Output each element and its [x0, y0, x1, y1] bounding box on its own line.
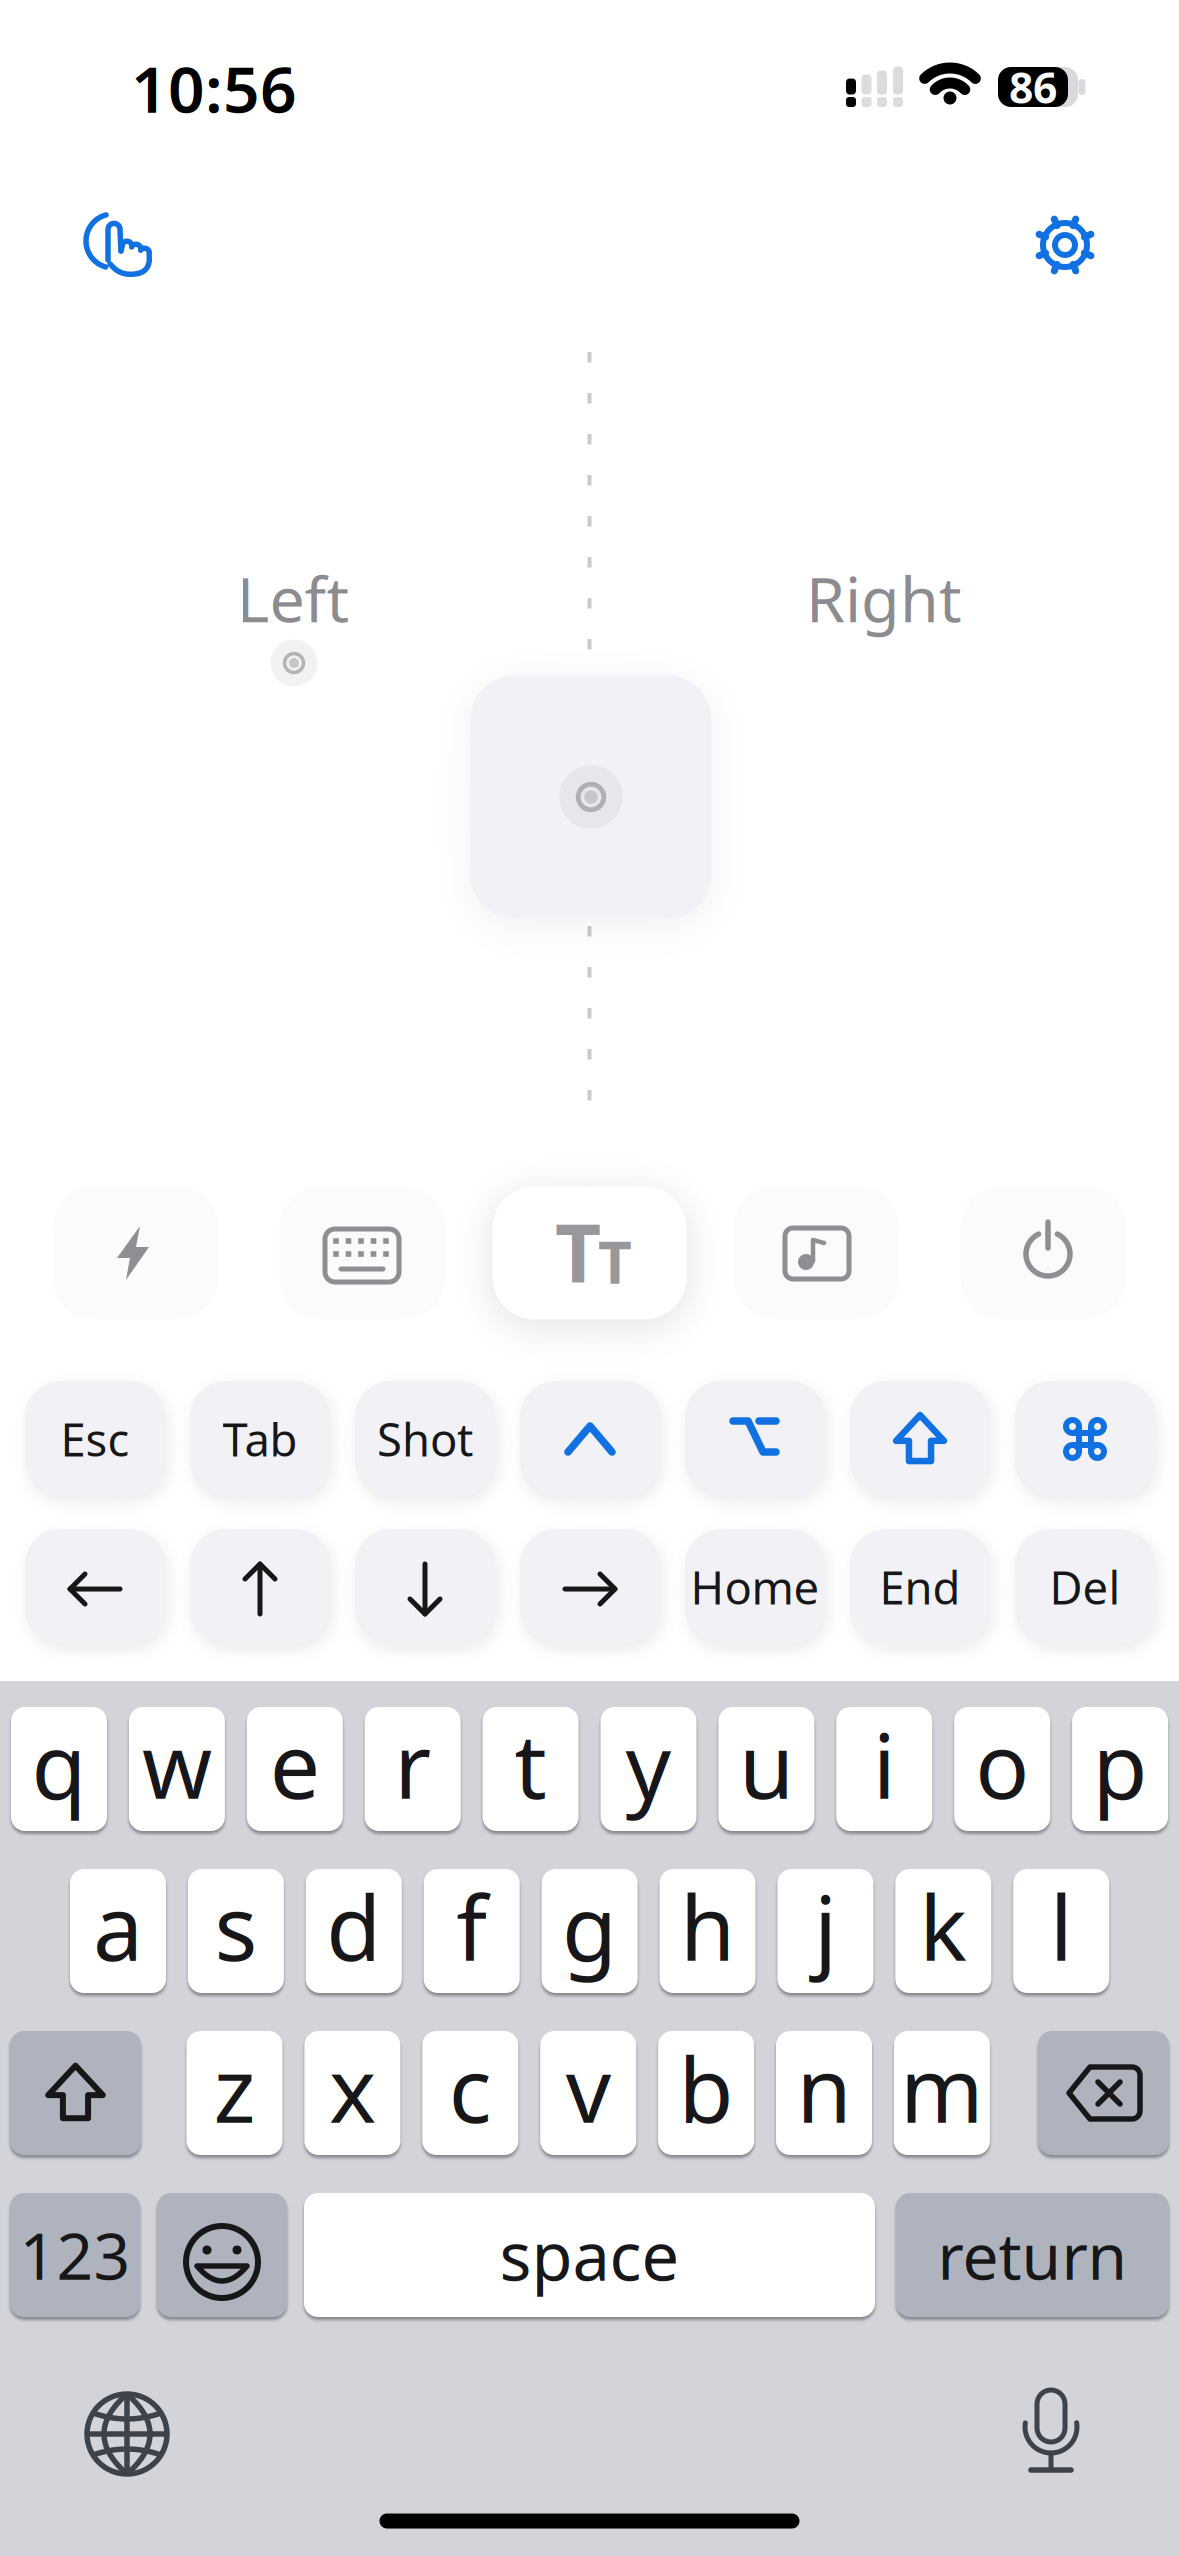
staticText: j: [814, 1867, 837, 1985]
button[interactable]: Shot: [355, 1381, 495, 1497]
staticText: End: [879, 1557, 960, 1617]
staticText: p: [1093, 1705, 1148, 1823]
button[interactable]: 123: [10, 2193, 140, 2317]
button[interactable]: [1025, 205, 1105, 285]
button[interactable]: s: [188, 1869, 284, 1993]
button[interactable]: Esc: [25, 1381, 165, 1497]
button[interactable]: [850, 1381, 990, 1497]
staticText: i: [873, 1705, 896, 1823]
staticText: m: [900, 2029, 984, 2147]
staticText: v: [566, 2029, 611, 2147]
button[interactable]: [77, 2384, 177, 2484]
button[interactable]: [1038, 2031, 1169, 2155]
staticText: n: [796, 2029, 851, 2147]
staticText: z: [213, 2029, 255, 2147]
button[interactable]: Del: [1015, 1529, 1155, 1645]
staticText: 86: [1009, 59, 1057, 115]
button[interactable]: f: [424, 1869, 520, 1993]
button[interactable]: [733, 1186, 899, 1319]
button[interactable]: return: [896, 2193, 1169, 2317]
staticText: l: [1050, 1867, 1073, 1985]
staticText: b: [679, 2029, 734, 2147]
button[interactable]: [520, 1529, 660, 1645]
staticText: k: [919, 1867, 967, 1985]
button[interactable]: [25, 1529, 165, 1645]
staticText: g: [562, 1867, 617, 1985]
staticText: h: [680, 1867, 735, 1985]
staticText: r: [394, 1705, 431, 1823]
staticText: Tab: [222, 1409, 297, 1469]
staticText: t: [515, 1705, 547, 1823]
staticText: Home: [690, 1557, 819, 1617]
button[interactable]: [10, 2031, 141, 2155]
staticText: o: [975, 1705, 1029, 1823]
staticText: d: [326, 1867, 381, 1985]
button[interactable]: Tab: [190, 1381, 330, 1497]
staticText: space: [499, 2211, 679, 2299]
button[interactable]: r: [365, 1707, 461, 1831]
button[interactable]: z: [186, 2031, 282, 2155]
staticText: return: [937, 2212, 1127, 2297]
button[interactable]: u: [718, 1707, 814, 1831]
staticText: Right: [806, 556, 962, 640]
button[interactable]: q: [11, 1707, 107, 1831]
staticText: Left: [236, 556, 349, 640]
button[interactable]: n: [776, 2031, 872, 2155]
button[interactable]: [520, 1381, 660, 1497]
button[interactable]: e: [247, 1707, 343, 1831]
button[interactable]: c: [422, 2031, 518, 2155]
staticText: c: [449, 2029, 492, 2147]
staticText: Del: [1049, 1557, 1120, 1617]
staticText: u: [739, 1705, 794, 1823]
staticText: a: [93, 1867, 143, 1985]
button[interactable]: space: [304, 2193, 875, 2317]
button[interactable]: [52, 1186, 218, 1319]
staticText: 123: [19, 2212, 130, 2297]
staticText: Esc: [60, 1409, 129, 1469]
button[interactable]: [1011, 2382, 1091, 2482]
button[interactable]: [355, 1529, 495, 1645]
staticText: T: [555, 1199, 601, 1305]
button[interactable]: [190, 1529, 330, 1645]
staticText: e: [270, 1705, 320, 1823]
staticText: y: [625, 1705, 671, 1823]
button[interactable]: [492, 1186, 686, 1319]
staticText: f: [456, 1867, 487, 1985]
staticText: T: [598, 1222, 632, 1300]
staticText: s: [214, 1867, 257, 1985]
button[interactable]: m: [894, 2031, 990, 2155]
button[interactable]: h: [659, 1869, 755, 1993]
button[interactable]: j: [777, 1869, 873, 1993]
button[interactable]: l: [1013, 1869, 1109, 1993]
button[interactable]: b: [658, 2031, 754, 2155]
button[interactable]: g: [542, 1869, 638, 1993]
button[interactable]: End: [850, 1529, 990, 1645]
button[interactable]: w: [129, 1707, 225, 1831]
button[interactable]: p: [1072, 1707, 1168, 1831]
button[interactable]: i: [836, 1707, 932, 1831]
button[interactable]: a: [70, 1869, 166, 1993]
button[interactable]: o: [954, 1707, 1050, 1831]
button[interactable]: Home: [685, 1529, 825, 1645]
staticText: Shot: [377, 1409, 473, 1469]
staticText: x: [329, 2029, 376, 2147]
button[interactable]: [685, 1381, 825, 1497]
staticText: 10:56: [131, 45, 297, 130]
button[interactable]: [279, 1186, 445, 1319]
button[interactable]: v: [540, 2031, 636, 2155]
staticText: q: [31, 1705, 86, 1823]
button[interactable]: y: [600, 1707, 696, 1831]
button[interactable]: x: [304, 2031, 400, 2155]
button[interactable]: k: [895, 1869, 991, 1993]
button[interactable]: d: [306, 1869, 402, 1993]
button[interactable]: [77, 203, 157, 283]
button[interactable]: [157, 2193, 287, 2317]
staticText: w: [142, 1705, 212, 1823]
button[interactable]: [1015, 1381, 1155, 1497]
button[interactable]: t: [483, 1707, 579, 1831]
button[interactable]: [960, 1186, 1126, 1319]
